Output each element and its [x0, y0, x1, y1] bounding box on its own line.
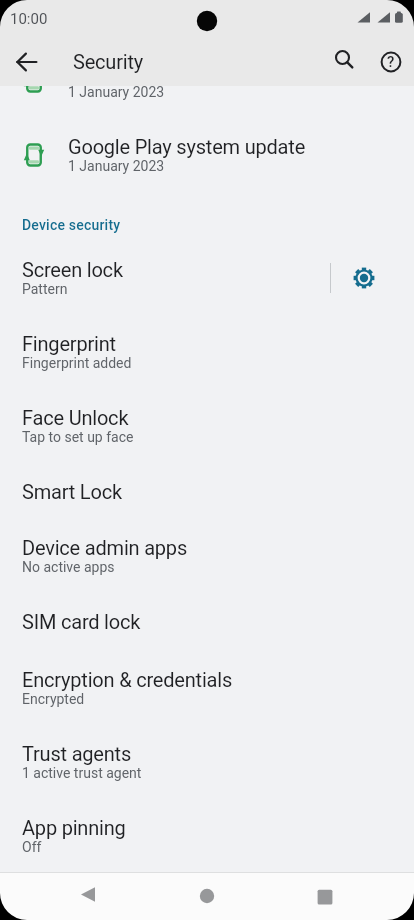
staticText: Off: [22, 839, 42, 855]
button[interactable]: Screen lock: [0, 247, 414, 321]
staticText: 1 active trust agent: [22, 765, 142, 781]
button[interactable]: ?: [367, 38, 414, 86]
staticText: Encrypted: [22, 691, 85, 707]
button[interactable]: Face Unlock: [0, 395, 414, 469]
staticText: Tap to set up face: [22, 429, 134, 445]
staticText: Google Play system update: [68, 135, 306, 158]
staticText: Face Unlock: [22, 406, 129, 429]
staticText: Encryption & credentials: [22, 668, 233, 691]
button[interactable]: Device admin apps: [0, 525, 414, 599]
staticText: Security: [73, 50, 144, 73]
button[interactable]: 1 January 2023: [0, 86, 414, 124]
staticText: Trust agents: [22, 742, 132, 765]
staticText: Device security: [22, 217, 121, 233]
staticText: Screen lock: [22, 258, 123, 281]
button[interactable]: Trust agents: [0, 731, 414, 805]
staticText: ?: [387, 53, 395, 71]
staticText: 1 January 2023: [68, 84, 165, 100]
staticText: Smart Lock: [22, 480, 122, 503]
staticText: No active apps: [22, 559, 115, 575]
button[interactable]: App pinning: [0, 805, 414, 872]
button[interactable]: Encryption & credentials: [0, 657, 414, 731]
staticText: 10:00: [10, 10, 48, 28]
button[interactable]: [183, 872, 231, 920]
button[interactable]: [340, 254, 388, 302]
button[interactable]: Smart Lock: [0, 469, 414, 525]
staticText: Fingerprint: [22, 332, 116, 355]
staticText: SIM card lock: [22, 610, 141, 633]
button[interactable]: Google Play system update: [0, 124, 414, 198]
staticText: Device admin apps: [22, 536, 188, 559]
button[interactable]: [319, 38, 367, 86]
staticText: App pinning: [22, 816, 126, 839]
button[interactable]: [64, 872, 112, 920]
button[interactable]: SIM card lock: [0, 599, 414, 657]
button[interactable]: [301, 872, 349, 920]
staticText: 1 January 2023: [68, 158, 165, 174]
staticText: Pattern: [22, 281, 68, 297]
button[interactable]: Fingerprint: [0, 321, 414, 395]
staticText: Fingerprint added: [22, 355, 132, 371]
button[interactable]: [3, 38, 51, 86]
